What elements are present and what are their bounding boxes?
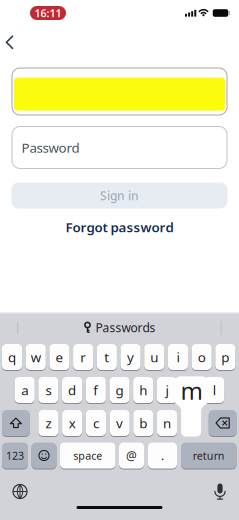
button[interactable]: Emoji bbox=[31, 442, 56, 469]
button[interactable]: Dictation bbox=[213, 482, 226, 500]
staticText: space bbox=[73, 448, 102, 463]
button[interactable]: Stop screen recording bbox=[30, 6, 66, 20]
button[interactable]: @ bbox=[119, 442, 144, 469]
button[interactable]: Sign in bbox=[11, 182, 227, 208]
button[interactable]: k bbox=[180, 376, 201, 403]
staticText: Password bbox=[21, 139, 79, 156]
button[interactable]: g bbox=[109, 376, 130, 403]
staticText: v bbox=[116, 414, 123, 432]
staticText: a bbox=[21, 381, 28, 399]
staticText: e bbox=[55, 348, 63, 366]
button[interactable]: return bbox=[181, 442, 236, 469]
button[interactable]: n bbox=[157, 409, 177, 436]
staticText: p bbox=[221, 348, 229, 366]
button[interactable]: j bbox=[157, 376, 177, 403]
staticText: g bbox=[115, 381, 123, 399]
staticText: n bbox=[163, 414, 171, 432]
button[interactable]: b bbox=[133, 409, 153, 436]
button[interactable]: r bbox=[73, 343, 93, 370]
staticText: h bbox=[139, 381, 147, 399]
staticText: m bbox=[180, 375, 202, 406]
button[interactable]: Delete bbox=[209, 409, 236, 436]
staticText: 16:11 bbox=[34, 6, 61, 20]
button[interactable]: o bbox=[192, 343, 212, 370]
staticText: i bbox=[176, 348, 179, 366]
button[interactable]: Password bbox=[11, 126, 227, 169]
button[interactable]: l bbox=[204, 376, 224, 403]
staticText: q bbox=[8, 348, 16, 366]
button[interactable]: t bbox=[97, 343, 117, 370]
button[interactable]: p bbox=[215, 343, 235, 370]
staticText: r bbox=[80, 348, 86, 366]
button[interactable]: h bbox=[133, 376, 153, 403]
button[interactable]: a bbox=[15, 376, 35, 403]
button[interactable]: c bbox=[86, 409, 106, 436]
button[interactable]: 123 bbox=[2, 442, 28, 469]
staticText: return bbox=[193, 448, 225, 463]
staticText: 123 bbox=[6, 448, 24, 463]
staticText: Forgot password bbox=[65, 218, 173, 236]
staticText: u bbox=[150, 348, 158, 366]
button[interactable]: Passwords bbox=[74, 317, 164, 337]
staticText: t bbox=[104, 348, 109, 366]
button[interactable]: Back bbox=[3, 33, 21, 51]
button[interactable]: space bbox=[60, 442, 115, 469]
staticText: j bbox=[165, 381, 168, 399]
staticText: o bbox=[198, 348, 206, 366]
staticText: Passwords bbox=[95, 319, 155, 335]
button[interactable]: d bbox=[62, 376, 82, 403]
button[interactable]: u bbox=[144, 343, 164, 370]
button[interactable]: Shift bbox=[2, 409, 30, 436]
button[interactable]: v bbox=[109, 409, 130, 436]
staticText: l bbox=[213, 381, 216, 399]
staticText: f bbox=[93, 381, 98, 399]
staticText: d bbox=[68, 381, 76, 399]
staticText: s bbox=[45, 381, 51, 399]
staticText: b bbox=[139, 414, 147, 432]
staticText: @ bbox=[126, 447, 137, 463]
staticText: w bbox=[31, 348, 41, 366]
button[interactable]: f bbox=[86, 376, 106, 403]
button[interactable]: w bbox=[26, 343, 46, 370]
staticText: c bbox=[93, 414, 99, 432]
staticText: x bbox=[69, 414, 76, 432]
button[interactable]: Next keyboard bbox=[12, 483, 28, 499]
staticText: y bbox=[127, 348, 134, 366]
button[interactable]: s bbox=[38, 376, 58, 403]
button[interactable]: z bbox=[38, 409, 59, 436]
button[interactable]: x bbox=[62, 409, 82, 436]
button[interactable]: e bbox=[49, 343, 69, 370]
button[interactable]: Forgot password bbox=[65, 218, 173, 236]
button[interactable]: Username bbox=[11, 67, 227, 115]
button[interactable]: q bbox=[2, 343, 22, 370]
button[interactable]: . bbox=[148, 442, 177, 469]
staticText: . bbox=[161, 447, 164, 463]
button[interactable]: y bbox=[120, 343, 141, 370]
staticText: k bbox=[187, 381, 194, 399]
staticText: Sign in bbox=[100, 187, 139, 203]
button[interactable]: i bbox=[168, 343, 188, 370]
staticText: z bbox=[45, 414, 51, 432]
